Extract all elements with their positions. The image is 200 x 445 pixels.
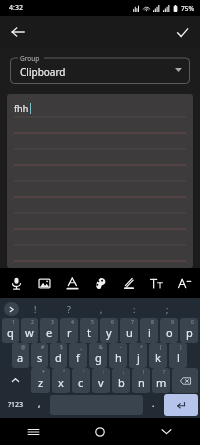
staticText: s bbox=[37, 350, 43, 365]
staticText: v bbox=[98, 375, 104, 390]
button[interactable]: - bbox=[109, 343, 127, 368]
staticText: 0 bbox=[191, 319, 194, 326]
button[interactable]: ( bbox=[149, 343, 167, 368]
button[interactable]: Text format bbox=[144, 271, 168, 295]
button[interactable]: Shift bbox=[2, 368, 29, 393]
button[interactable]: & bbox=[89, 343, 107, 368]
button[interactable]: 5 bbox=[80, 318, 98, 343]
button[interactable]: Draw bbox=[116, 271, 140, 295]
staticText: 9 bbox=[171, 319, 174, 326]
staticText: m bbox=[156, 375, 167, 390]
button[interactable]: ? bbox=[152, 368, 170, 393]
staticText: . bbox=[152, 397, 155, 409]
staticText: ! bbox=[34, 303, 37, 315]
staticText: b bbox=[118, 375, 125, 390]
button[interactable]: ? bbox=[52, 299, 85, 318]
button[interactable]: Recents bbox=[0, 418, 66, 445]
staticText: , bbox=[38, 397, 41, 409]
staticText: i bbox=[148, 325, 151, 340]
button[interactable]: 0 bbox=[180, 318, 198, 343]
staticText: x bbox=[58, 375, 64, 390]
button[interactable]: . bbox=[145, 393, 162, 417]
button[interactable]: ?123 bbox=[2, 393, 29, 417]
button[interactable]: , bbox=[85, 299, 118, 318]
staticText: y bbox=[106, 325, 112, 340]
staticText: k bbox=[155, 350, 161, 365]
staticText: n bbox=[138, 375, 145, 390]
staticText: z bbox=[38, 375, 44, 390]
button[interactable]: ! bbox=[19, 299, 52, 318]
button[interactable]: 8 bbox=[140, 318, 158, 343]
staticText: 4:32 bbox=[9, 3, 23, 13]
staticText: Clipboard bbox=[20, 65, 66, 79]
button[interactable]: + bbox=[129, 343, 147, 368]
staticText: 2 bbox=[31, 319, 34, 326]
button[interactable]: $ bbox=[50, 343, 67, 368]
staticText: 7 bbox=[131, 319, 134, 326]
staticText: f bbox=[76, 350, 80, 365]
button[interactable]: 4 bbox=[60, 318, 78, 343]
staticText: Group bbox=[20, 54, 40, 63]
staticText: : bbox=[103, 369, 105, 376]
button[interactable]: Decrease text size bbox=[172, 271, 196, 295]
staticText: - bbox=[120, 344, 122, 351]
staticText: e bbox=[46, 325, 53, 340]
button[interactable]: # bbox=[31, 343, 48, 368]
button[interactable]: Enter bbox=[164, 394, 198, 416]
button[interactable]: @ bbox=[12, 343, 29, 368]
staticText: ; bbox=[123, 369, 125, 376]
button[interactable]: Group bbox=[10, 54, 190, 84]
button[interactable]: Hide keyboard bbox=[133, 418, 200, 445]
staticText: + bbox=[140, 344, 143, 351]
button[interactable]: More suggestions bbox=[4, 302, 19, 316]
staticText: 3 bbox=[51, 319, 54, 326]
staticText: q bbox=[7, 325, 14, 340]
button[interactable]: Save bbox=[168, 18, 196, 46]
staticText: * bbox=[42, 369, 45, 376]
button[interactable]: 6 bbox=[100, 318, 118, 343]
button[interactable]: : bbox=[92, 368, 110, 393]
button[interactable]: Text color bbox=[60, 271, 84, 295]
button[interactable]: _ bbox=[69, 343, 87, 368]
staticText: r bbox=[67, 325, 72, 340]
button[interactable]: 3 bbox=[40, 318, 58, 343]
staticText: ) bbox=[180, 344, 182, 351]
staticText: ?123 bbox=[8, 400, 24, 410]
button[interactable]: * bbox=[31, 368, 50, 393]
staticText: 8 bbox=[151, 319, 154, 326]
staticText: $ bbox=[60, 344, 63, 351]
staticText: " bbox=[63, 369, 66, 376]
button[interactable]: 1 bbox=[2, 318, 19, 343]
staticText: _ bbox=[80, 344, 83, 351]
button[interactable]: 2 bbox=[21, 318, 38, 343]
staticText: p bbox=[186, 325, 193, 340]
button[interactable]: 9 bbox=[160, 318, 178, 343]
button[interactable]: fhh bbox=[7, 94, 193, 268]
staticText: g bbox=[95, 350, 102, 365]
button[interactable]: Insert image bbox=[32, 271, 56, 295]
button[interactable]: Home bbox=[66, 418, 133, 445]
button[interactable]: , bbox=[31, 393, 48, 417]
staticText: c bbox=[78, 375, 84, 390]
button[interactable]: ; bbox=[151, 299, 184, 318]
staticText: h bbox=[115, 350, 122, 365]
button[interactable]: ) bbox=[169, 343, 187, 368]
button[interactable]: ' bbox=[72, 368, 90, 393]
button[interactable]: Back bbox=[4, 18, 32, 46]
button[interactable]: Palette bbox=[88, 271, 112, 295]
button[interactable]: ! bbox=[132, 368, 150, 393]
button[interactable]: 7 bbox=[120, 318, 138, 343]
button[interactable]: ; bbox=[112, 368, 130, 393]
staticText: u bbox=[126, 325, 133, 340]
staticText: & bbox=[99, 344, 103, 351]
button[interactable]: " bbox=[52, 368, 70, 393]
button[interactable]: Voice input bbox=[4, 271, 28, 295]
button[interactable]: : bbox=[118, 299, 151, 318]
staticText: j bbox=[137, 350, 140, 365]
staticText: ; bbox=[166, 303, 169, 315]
button[interactable]: Backspace bbox=[172, 368, 198, 393]
staticText: 1 bbox=[12, 319, 15, 326]
staticText: , bbox=[100, 303, 103, 315]
staticText: ? bbox=[67, 303, 71, 315]
